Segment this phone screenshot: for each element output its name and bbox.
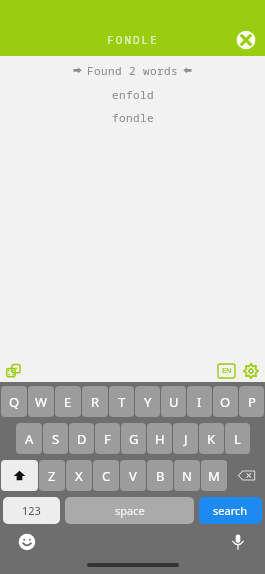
staticText: P <box>248 393 256 411</box>
button[interactable]: S <box>43 423 68 454</box>
staticText: X <box>75 467 83 485</box>
staticText: F <box>104 430 111 448</box>
staticText: M <box>208 467 220 485</box>
button[interactable]: J <box>173 423 198 454</box>
button[interactable]: Voice input <box>229 533 247 551</box>
staticText: J <box>184 430 188 448</box>
staticText: U <box>169 393 179 411</box>
staticText: Z <box>48 467 56 485</box>
button[interactable]: space <box>65 497 194 524</box>
button[interactable]: C <box>93 460 119 491</box>
staticText: E <box>64 393 72 411</box>
staticText: L <box>234 430 241 448</box>
button[interactable]: A <box>16 423 42 454</box>
button[interactable]: Y <box>135 386 160 417</box>
button[interactable]: Settings <box>243 363 259 379</box>
staticText: W <box>35 393 48 411</box>
button[interactable]: L <box>225 423 250 454</box>
staticText: I <box>197 393 202 411</box>
button[interactable]: O <box>213 386 238 417</box>
staticText: O <box>220 393 231 411</box>
button[interactable]: P <box>239 386 264 417</box>
staticText: V <box>129 467 137 485</box>
button[interactable]: Emoji <box>18 533 36 551</box>
button[interactable]: X <box>66 460 92 491</box>
button[interactable]: M <box>201 460 227 491</box>
staticText: search <box>213 503 248 518</box>
button[interactable]: N <box>174 460 200 491</box>
staticText: D <box>77 430 87 448</box>
staticText: space <box>115 503 145 518</box>
button[interactable]: Z <box>39 460 65 491</box>
button[interactable]: B <box>147 460 173 491</box>
staticText: C <box>102 467 111 485</box>
staticText: T <box>118 393 126 411</box>
staticText: S <box>52 430 60 448</box>
button[interactable]: F <box>95 423 120 454</box>
button[interactable]: I <box>187 386 212 417</box>
button[interactable]: U <box>161 386 186 417</box>
staticText: EN <box>222 366 232 376</box>
staticText: R <box>91 393 100 411</box>
staticText: B <box>156 467 165 485</box>
staticText: K <box>207 430 216 448</box>
button[interactable]: D <box>69 423 94 454</box>
button[interactable]: Dice <box>5 362 23 380</box>
button[interactable]: G <box>121 423 146 454</box>
button[interactable]: Close <box>234 28 258 52</box>
button[interactable]: search <box>199 497 262 524</box>
staticText: N <box>182 467 192 485</box>
staticText: Found 2 words <box>87 63 178 78</box>
staticText: G <box>129 430 139 448</box>
button[interactable]: K <box>199 423 224 454</box>
button[interactable]: enfold <box>112 87 154 102</box>
button[interactable]: 123 <box>3 497 60 524</box>
staticText: 123 <box>22 503 41 518</box>
button[interactable]: fondle <box>112 110 154 125</box>
button[interactable]: R <box>82 386 108 417</box>
button[interactable]: Q <box>1 386 27 417</box>
button[interactable]: H <box>147 423 172 454</box>
button[interactable]: W <box>28 386 54 417</box>
staticText: Q <box>9 393 20 411</box>
button[interactable]: Language EN <box>218 364 235 378</box>
button[interactable]: T <box>109 386 134 417</box>
button[interactable]: Shift <box>1 460 38 491</box>
staticText: H <box>155 430 165 448</box>
staticText: Y <box>144 393 152 411</box>
staticText: A <box>25 430 34 448</box>
button[interactable]: E <box>55 386 81 417</box>
button[interactable]: V <box>120 460 146 491</box>
button[interactable]: Backspace <box>228 460 264 491</box>
staticText: FONDLE <box>107 32 159 47</box>
